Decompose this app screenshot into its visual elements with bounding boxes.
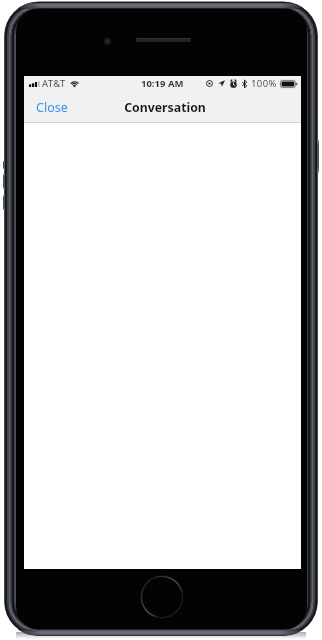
staticText: Close	[36, 99, 68, 116]
staticText: AT&T	[42, 77, 66, 90]
staticText: 10:19 AM	[141, 77, 184, 90]
staticText: 100%	[251, 77, 277, 90]
button[interactable]: Close	[32, 94, 72, 121]
staticText: Conversation	[124, 99, 206, 116]
